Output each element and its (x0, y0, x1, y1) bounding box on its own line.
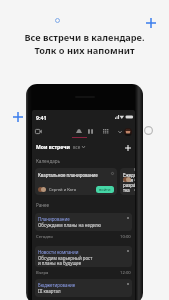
staticText: войти (99, 187, 111, 192)
button[interactable]: все (73, 144, 85, 150)
staticText: 9:41 (36, 114, 47, 121)
staticText: Обсудим карьерный рост и планы на будуще… (38, 255, 93, 267)
staticText: Календарь (36, 158, 61, 164)
staticText: 12:00 (120, 270, 131, 276)
staticText: Мои встречи (36, 144, 70, 151)
staticText: Обсуждаем планы на неделю (38, 222, 102, 228)
button[interactable]: Meetings tab (72, 125, 86, 137)
button[interactable]: Video call (33, 126, 44, 137)
staticText: Сегодня (36, 234, 53, 240)
staticText: 10:00 (120, 234, 131, 240)
button[interactable]: Expand (115, 127, 124, 136)
staticText: Бюджетирование (38, 282, 76, 288)
staticText: Сергей и Катя (49, 187, 76, 192)
button[interactable]: Contacts tab (84, 125, 96, 137)
staticText: Сергей и Катя (134, 168, 135, 192)
staticText: Вчера (36, 270, 49, 276)
button[interactable]: Apps tab (100, 125, 112, 137)
staticText: Все встречи в календаре. (24, 31, 145, 44)
button[interactable]: войти (96, 186, 114, 193)
staticText: Планирование (38, 216, 70, 222)
button[interactable]: Планирование (35, 213, 132, 231)
staticText: Толк о них напомнит (34, 44, 135, 57)
button[interactable]: Квартальное планирование (35, 168, 117, 195)
staticText: Ежедневная разработка (123, 172, 135, 193)
button[interactable]: Бюджетирование (35, 279, 132, 297)
button[interactable]: Ежедневная разработка (120, 168, 135, 195)
button[interactable]: Новости компании (35, 246, 132, 267)
button[interactable]: Profile (124, 128, 132, 136)
button[interactable]: Add meeting (122, 142, 133, 153)
staticText: все (73, 144, 81, 150)
staticText: Ранее (36, 202, 50, 208)
staticText: Новости компании (38, 249, 79, 255)
staticText: III квартал (38, 288, 61, 294)
staticText: Квартальное планирование (38, 172, 98, 178)
